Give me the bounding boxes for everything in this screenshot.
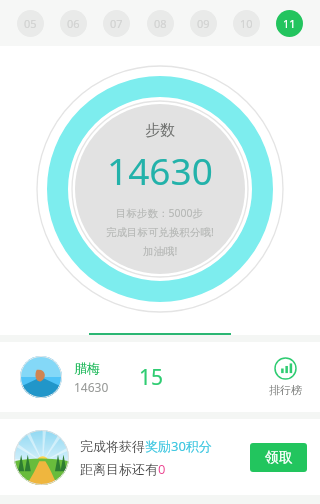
staticText: 05 (24, 16, 37, 31)
button[interactable]: 06 (60, 10, 87, 37)
staticText: 腊梅 (74, 360, 100, 376)
button[interactable]: 05 (17, 10, 44, 37)
other: 排行榜 (274, 357, 297, 380)
staticText: 距离目标还有0 (80, 460, 166, 478)
staticText: 14630 (107, 145, 213, 195)
button[interactable]: 09 (190, 10, 217, 37)
staticText: 加油哦! (143, 244, 178, 258)
staticText: 09 (197, 16, 210, 31)
button[interactable]: 07 (103, 10, 130, 37)
staticText: 领取 (265, 449, 293, 467)
button[interactable]: 10 (233, 10, 260, 37)
button[interactable]: 腊梅 (0, 342, 320, 412)
staticText: 目标步数：5000步 (116, 206, 204, 220)
staticText: 排行榜 (269, 383, 302, 397)
staticText: 06 (67, 16, 80, 31)
staticText: 07 (110, 16, 123, 31)
button[interactable]: 11 (276, 10, 303, 37)
staticText: 14630 (74, 379, 109, 395)
staticText: 10 (240, 16, 253, 31)
staticText: 11 (283, 16, 296, 31)
button[interactable]: 08 (147, 10, 174, 37)
staticText: 08 (154, 16, 167, 31)
staticText: 完成将获得奖励30积分 (80, 437, 212, 455)
staticText: 完成目标可兑换积分哦! (106, 225, 214, 239)
staticText: 步数 (145, 121, 175, 140)
staticText: 15 (139, 363, 164, 392)
button[interactable]: 排行榜 (265, 353, 306, 401)
button[interactable]: 领取 (250, 443, 307, 472)
